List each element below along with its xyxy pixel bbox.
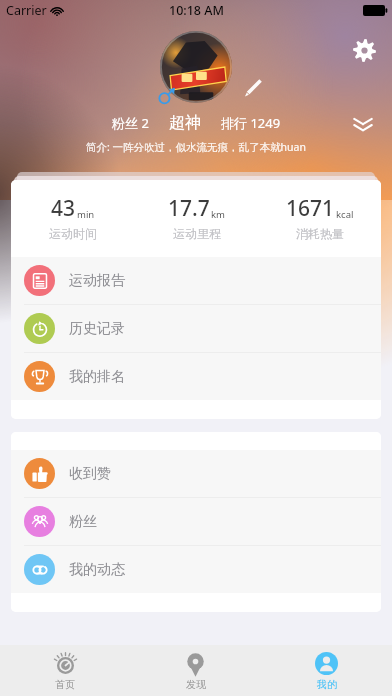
staticText: 历史记录 bbox=[69, 320, 125, 338]
staticText: 10:18 AM bbox=[169, 2, 224, 19]
staticText: 排行 1249 bbox=[221, 114, 281, 132]
staticText: 消耗热量 bbox=[296, 226, 344, 241]
staticText: 超神 bbox=[169, 113, 201, 133]
button[interactable]: 运动报告 bbox=[11, 257, 381, 304]
staticText: 我的排名 bbox=[69, 368, 125, 386]
button[interactable]: 我的动态 bbox=[11, 546, 381, 593]
staticText: 简介: 一阵分吹过，似水流无痕，乱了本就huan bbox=[86, 140, 306, 154]
button[interactable]: 收到赞 bbox=[11, 450, 381, 497]
button[interactable]: 发现 bbox=[130, 645, 261, 696]
button[interactable]: 粉丝 bbox=[11, 498, 381, 545]
button[interactable]: 我的排名 bbox=[11, 353, 381, 400]
staticText: min bbox=[77, 208, 95, 221]
button[interactable]: Edit profile bbox=[239, 74, 265, 100]
staticText: 运动时间 bbox=[49, 226, 97, 241]
button[interactable]: 我的 bbox=[261, 645, 392, 696]
staticText: 我的动态 bbox=[69, 561, 125, 579]
staticText: 收到赞 bbox=[69, 465, 111, 483]
button[interactable]: Expand bbox=[346, 108, 380, 142]
staticText: kcal bbox=[336, 208, 354, 221]
button[interactable]: 粉丝 2 bbox=[112, 114, 149, 132]
button[interactable]: 排行 1249 bbox=[221, 114, 281, 132]
staticText: 粉丝 bbox=[69, 513, 97, 531]
button[interactable]: 超神 bbox=[169, 113, 201, 133]
staticText: 运动里程 bbox=[173, 226, 221, 241]
button[interactable]: 首页 bbox=[0, 645, 130, 696]
staticText: 17.7 bbox=[168, 194, 210, 223]
button[interactable]: Settings bbox=[348, 34, 380, 66]
staticText: 43 bbox=[51, 194, 76, 223]
staticText: 1671 bbox=[286, 194, 335, 223]
staticText: 我的 bbox=[317, 678, 337, 691]
staticText: 发现 bbox=[186, 678, 206, 691]
button[interactable]: 历史记录 bbox=[11, 305, 381, 352]
staticText: 运动报告 bbox=[69, 272, 125, 290]
staticText: Carrier bbox=[6, 2, 47, 19]
button[interactable]: Avatar bbox=[160, 31, 232, 103]
staticText: 首页 bbox=[55, 678, 75, 691]
staticText: 粉丝 2 bbox=[112, 114, 149, 132]
staticText: km bbox=[211, 208, 225, 221]
